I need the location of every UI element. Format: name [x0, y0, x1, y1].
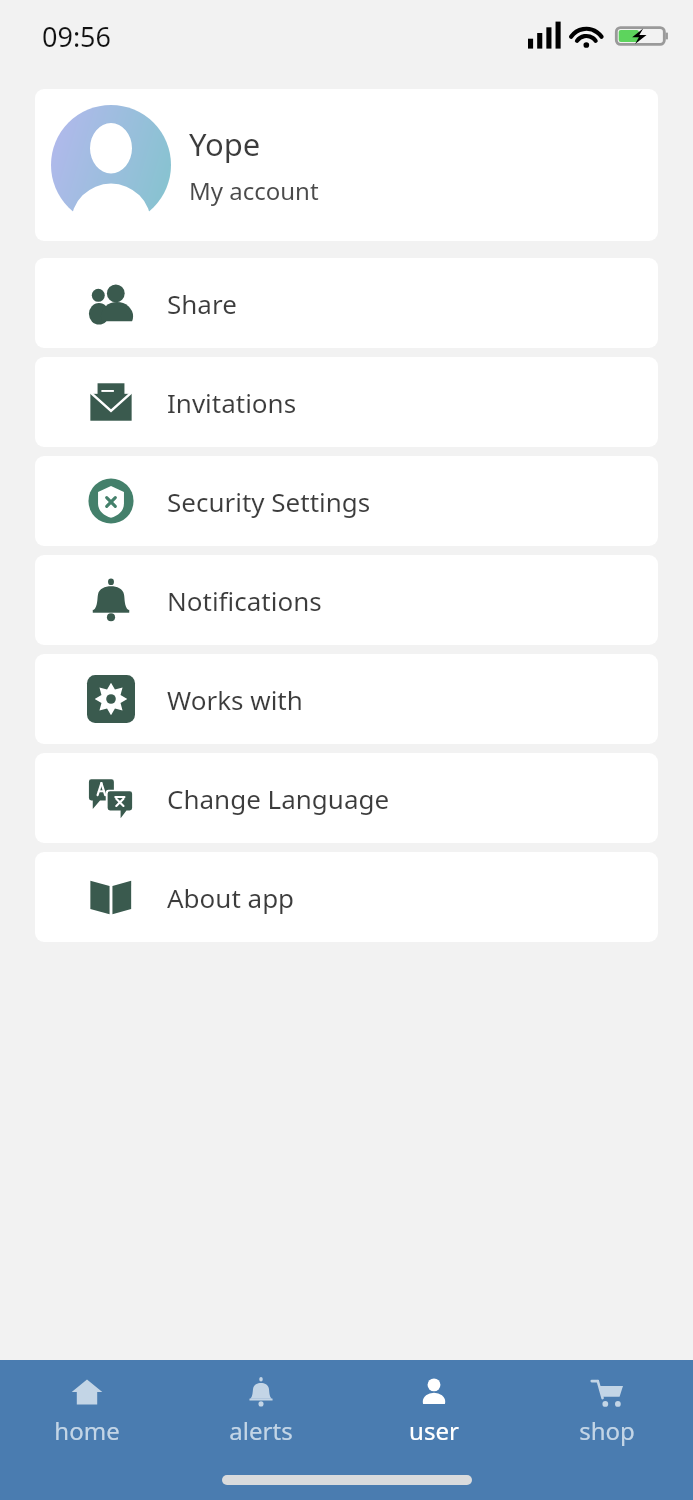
- button[interactable]: alerts: [174, 1360, 347, 1462]
- staticText: Share: [167, 286, 237, 321]
- staticText: My account: [189, 174, 319, 207]
- staticText: Yope: [189, 123, 261, 165]
- staticText: Change Language: [167, 781, 390, 816]
- button[interactable]: home: [0, 1360, 174, 1462]
- button[interactable]: user: [347, 1360, 520, 1462]
- staticText: Security Settings: [167, 484, 371, 519]
- button[interactable]: Yope: [35, 89, 658, 241]
- staticText: 09:56: [42, 18, 112, 55]
- button[interactable]: Notifications: [35, 555, 658, 645]
- button[interactable]: Share: [35, 258, 658, 348]
- button[interactable]: Change Language: [35, 753, 658, 843]
- staticText: Invitations: [167, 385, 297, 420]
- staticText: home: [54, 1414, 120, 1447]
- button[interactable]: About app: [35, 852, 658, 942]
- staticText: user: [409, 1414, 459, 1447]
- button[interactable]: Invitations: [35, 357, 658, 447]
- staticText: Works with: [167, 682, 303, 717]
- button[interactable]: shop: [520, 1360, 693, 1462]
- staticText: alerts: [229, 1414, 293, 1447]
- button[interactable]: Security Settings: [35, 456, 658, 546]
- button[interactable]: Works with: [35, 654, 658, 744]
- staticText: shop: [579, 1414, 635, 1447]
- staticText: About app: [167, 880, 295, 915]
- staticText: Notifications: [167, 583, 322, 618]
